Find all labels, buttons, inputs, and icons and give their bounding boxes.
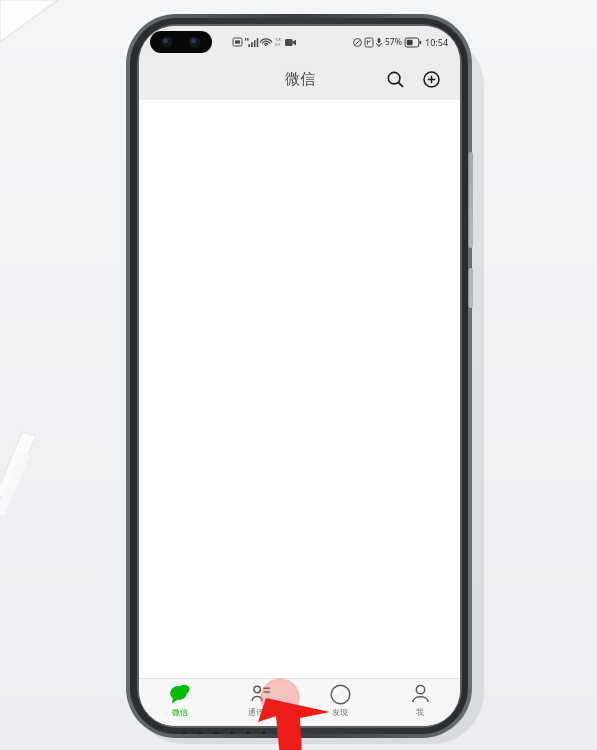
button[interactable]: 微信 — [139, 679, 220, 726]
button[interactable]: 通讯录 — [220, 679, 300, 726]
staticText: 发现 — [332, 707, 348, 717]
button[interactable]: Search — [380, 64, 410, 94]
staticText: K/S — [275, 42, 281, 47]
staticText: 1.8 — [275, 37, 281, 42]
staticText: 57% — [385, 36, 402, 48]
button[interactable]: Add — [416, 64, 446, 94]
button[interactable]: 我 — [380, 679, 460, 726]
staticText: 微信 — [172, 707, 188, 717]
staticText: 通讯录 — [248, 707, 272, 717]
staticText: 10:54 — [425, 36, 449, 48]
button[interactable]: 发现 — [300, 679, 380, 726]
staticText: 我 — [416, 707, 424, 717]
staticText: 微信 — [285, 70, 315, 89]
